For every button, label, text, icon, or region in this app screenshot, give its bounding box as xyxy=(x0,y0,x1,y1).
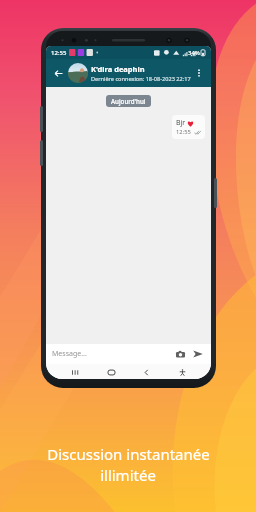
button[interactable]: More options xyxy=(191,65,207,81)
button[interactable]: Camera xyxy=(173,347,187,361)
staticText: 34% xyxy=(188,49,200,57)
button[interactable]: Accessibility xyxy=(175,365,189,379)
button[interactable]: Send xyxy=(191,347,205,361)
staticText: illimitée xyxy=(100,465,156,485)
staticText: Dernière connexion: 18-08-2023 22:17 xyxy=(91,75,191,83)
staticText: Aujourd'hui xyxy=(111,97,146,105)
staticText: 12:55 xyxy=(51,49,67,57)
button[interactable]: Bjr xyxy=(172,115,205,139)
staticText: Message... xyxy=(52,349,87,359)
button[interactable]: Recents xyxy=(68,365,82,379)
button[interactable]: Back xyxy=(50,65,66,81)
button[interactable]: Profile photo xyxy=(68,63,88,83)
staticText: K'dira deaphin xyxy=(91,64,145,74)
staticText: Bjr xyxy=(176,118,186,128)
button[interactable]: Home xyxy=(104,365,118,379)
staticText: 12:55 xyxy=(176,128,191,136)
button[interactable]: Aujourd'hui xyxy=(106,95,151,107)
button[interactable]: Back xyxy=(139,365,153,379)
staticText: Discussion instantanée xyxy=(47,444,210,464)
